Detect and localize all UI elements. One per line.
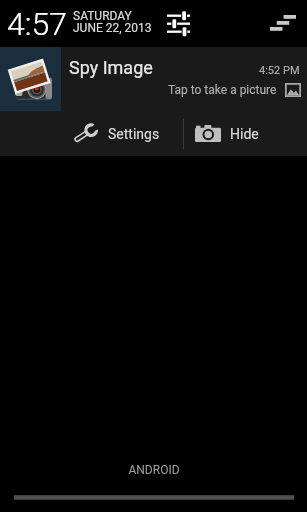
button[interactable]: Quick settings bbox=[161, 6, 196, 41]
staticText: 4:57 bbox=[7, 5, 67, 43]
staticText: 4:52 PM bbox=[259, 64, 300, 77]
other: Settings icon bbox=[72, 122, 100, 145]
staticText: SATURDAY bbox=[73, 9, 132, 23]
button[interactable]: Spy Image bbox=[0, 47, 307, 111]
other: Hide icon bbox=[195, 125, 221, 142]
staticText: Tap to take a picture bbox=[168, 83, 277, 97]
button[interactable]: Settings icon bbox=[0, 111, 183, 156]
staticText: Spy Image bbox=[69, 57, 153, 78]
staticText: JUNE 22, 2013 bbox=[73, 21, 152, 35]
other: Signal strength bbox=[270, 13, 296, 33]
staticText: Hide bbox=[230, 126, 259, 142]
button[interactable]: Hide icon bbox=[184, 111, 268, 156]
staticText: ANDROID bbox=[128, 463, 180, 477]
staticText: Settings bbox=[108, 126, 160, 142]
